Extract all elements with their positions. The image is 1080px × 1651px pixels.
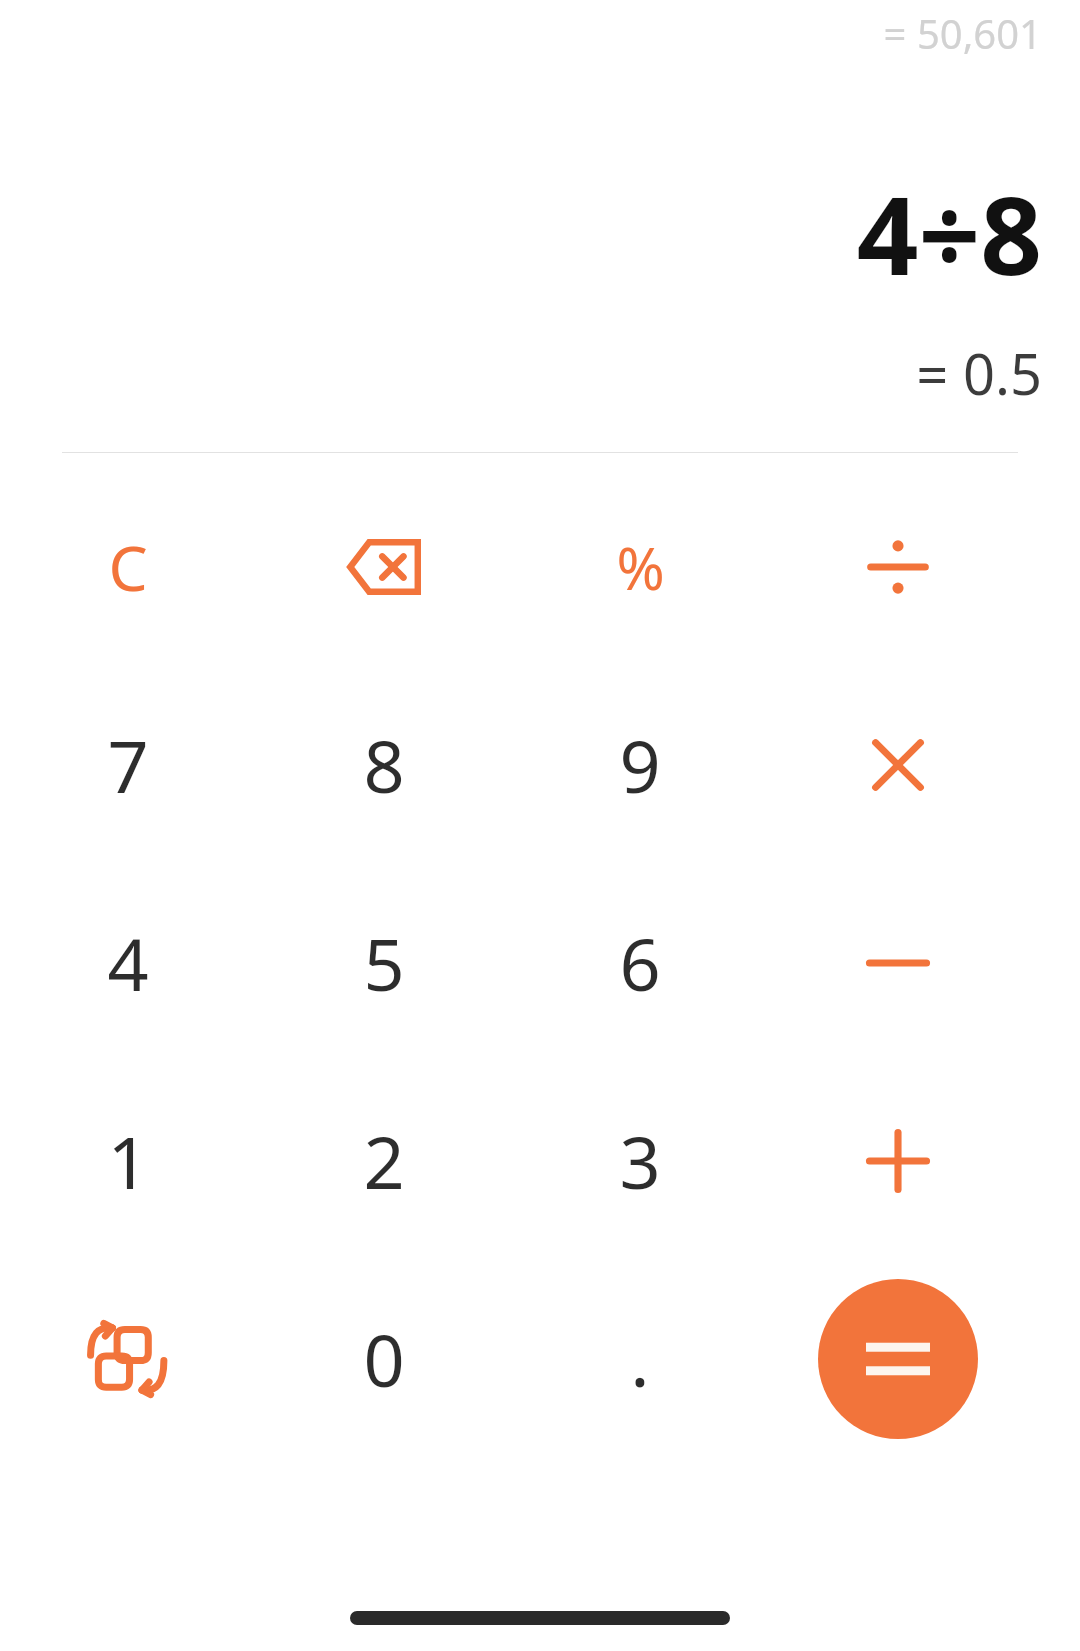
button[interactable]: 7 [28, 680, 228, 850]
button[interactable]: 8 [284, 680, 484, 850]
staticText: C [108, 525, 148, 609]
button[interactable]: 3 [540, 1076, 740, 1246]
button[interactable]: 6 [540, 878, 740, 1048]
button[interactable]: Backspace [284, 482, 484, 652]
button[interactable]: 1 [28, 1076, 228, 1246]
staticText: 1 [107, 1112, 149, 1210]
button[interactable]: Equals [818, 1279, 978, 1439]
button[interactable]: Decimal point [540, 1274, 740, 1444]
button[interactable]: 4 [28, 878, 228, 1048]
button[interactable]: Divide [798, 482, 998, 652]
button[interactable]: Unit converter [28, 1274, 228, 1444]
button[interactable]: Percent [540, 482, 740, 652]
button[interactable]: 5 [284, 878, 484, 1048]
staticText: . [630, 1310, 650, 1408]
button[interactable]: 9 [540, 680, 740, 850]
staticText: 2 [363, 1112, 405, 1210]
button[interactable]: 2 [284, 1076, 484, 1246]
staticText: 7 [107, 716, 149, 814]
staticText: = 0.5 [916, 335, 1042, 411]
staticText: = 50,601 [883, 6, 1042, 60]
button[interactable]: Minus [798, 878, 998, 1048]
staticText: % [616, 528, 665, 607]
staticText: 4 [107, 914, 149, 1012]
staticText: 9 [619, 716, 661, 814]
button[interactable]: 0 [284, 1274, 484, 1444]
staticText: 6 [619, 914, 661, 1012]
button[interactable]: Clear [28, 482, 228, 652]
button[interactable]: Multiply [798, 680, 998, 850]
staticText: 0 [363, 1310, 405, 1408]
staticText: 4÷8 [856, 160, 1042, 307]
staticText: 3 [619, 1112, 661, 1210]
staticText: 5 [363, 914, 405, 1012]
staticText: 8 [363, 716, 405, 814]
button[interactable]: Plus [798, 1076, 998, 1246]
